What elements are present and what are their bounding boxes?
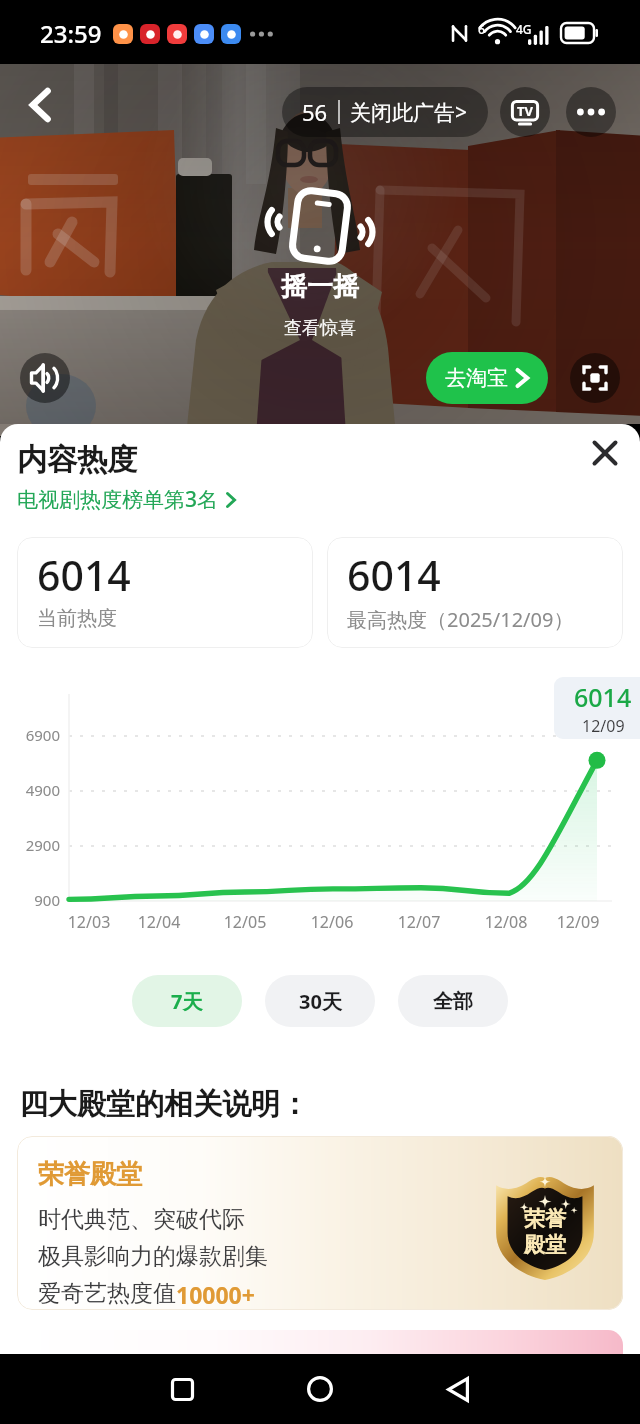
staticText: 内容热度 xyxy=(17,441,137,479)
staticText: 极具影响力的爆款剧集 xyxy=(38,1242,268,1271)
button[interactable]: 全部 xyxy=(398,975,508,1027)
staticText: 10000+ xyxy=(176,1279,255,1310)
button[interactable]: 30天 xyxy=(265,975,375,1027)
staticText: 时代典范、突破代际 xyxy=(38,1205,245,1234)
staticText: 12/05 xyxy=(215,911,275,933)
button[interactable]: Scan xyxy=(570,353,620,403)
button[interactable]: Back xyxy=(435,1366,481,1412)
staticText: 2900 xyxy=(16,835,60,855)
button[interactable]: Recent apps xyxy=(159,1366,205,1412)
button[interactable]: 7天 xyxy=(132,975,242,1027)
staticText: 查看惊喜 xyxy=(284,317,356,340)
button[interactable]: TV cast xyxy=(500,87,550,137)
staticText: 爱奇艺热度值 xyxy=(38,1279,176,1308)
staticText: 7天 xyxy=(171,988,203,1015)
button[interactable]: 电视剧热度榜单第3名 xyxy=(17,485,236,514)
button[interactable]: 56 xyxy=(282,87,488,137)
staticText: 6014 xyxy=(37,547,131,603)
button[interactable]: 去淘宝 xyxy=(426,352,548,404)
staticText: 23:59 xyxy=(40,17,102,50)
staticText: 最高热度（2025/12/09） xyxy=(347,606,574,633)
staticText: 6014 xyxy=(347,547,441,603)
staticText: 30天 xyxy=(299,988,342,1015)
staticText: 12/09 xyxy=(582,715,625,737)
staticText: 12/06 xyxy=(302,911,362,933)
button[interactable]: 6014 xyxy=(17,537,313,648)
staticText: 四大殿堂的相关说明： xyxy=(19,1086,309,1123)
staticText: 12/03 xyxy=(59,911,119,933)
staticText: 6014 xyxy=(574,680,632,714)
staticText: 12/07 xyxy=(389,911,449,933)
staticText: 摇一摇 xyxy=(281,270,359,303)
staticText: 6900 xyxy=(16,725,60,745)
staticText: 6 xyxy=(478,21,485,37)
button[interactable]: Home xyxy=(297,1366,343,1412)
staticText: 当前热度 xyxy=(37,606,117,631)
button[interactable]: More options xyxy=(566,87,616,137)
staticText: 荣誉 xyxy=(524,1206,566,1232)
button[interactable]: Sound xyxy=(20,353,70,403)
staticText: 12/08 xyxy=(476,911,536,933)
staticText: 电视剧热度榜单第3名 xyxy=(17,485,219,514)
staticText: 56 xyxy=(302,97,328,127)
button[interactable] xyxy=(17,1330,623,1354)
staticText: 4900 xyxy=(16,780,60,800)
staticText: 关闭此广告> xyxy=(350,98,468,127)
staticText: 去淘宝 xyxy=(445,365,508,391)
staticText: 荣誉殿堂 xyxy=(38,1158,142,1191)
button[interactable]: Close xyxy=(583,431,627,475)
staticText: 900 xyxy=(16,890,60,910)
staticText: 殿堂 xyxy=(524,1232,566,1258)
staticText: TV xyxy=(517,102,533,120)
staticText: 全部 xyxy=(433,989,473,1014)
button[interactable]: 6014 xyxy=(327,537,623,648)
button[interactable]: 荣誉殿堂 xyxy=(17,1136,623,1310)
staticText: 12/04 xyxy=(129,911,189,933)
staticText: 4G xyxy=(516,21,532,37)
button[interactable]: Back xyxy=(18,83,62,127)
staticText: 12/09 xyxy=(548,911,608,933)
